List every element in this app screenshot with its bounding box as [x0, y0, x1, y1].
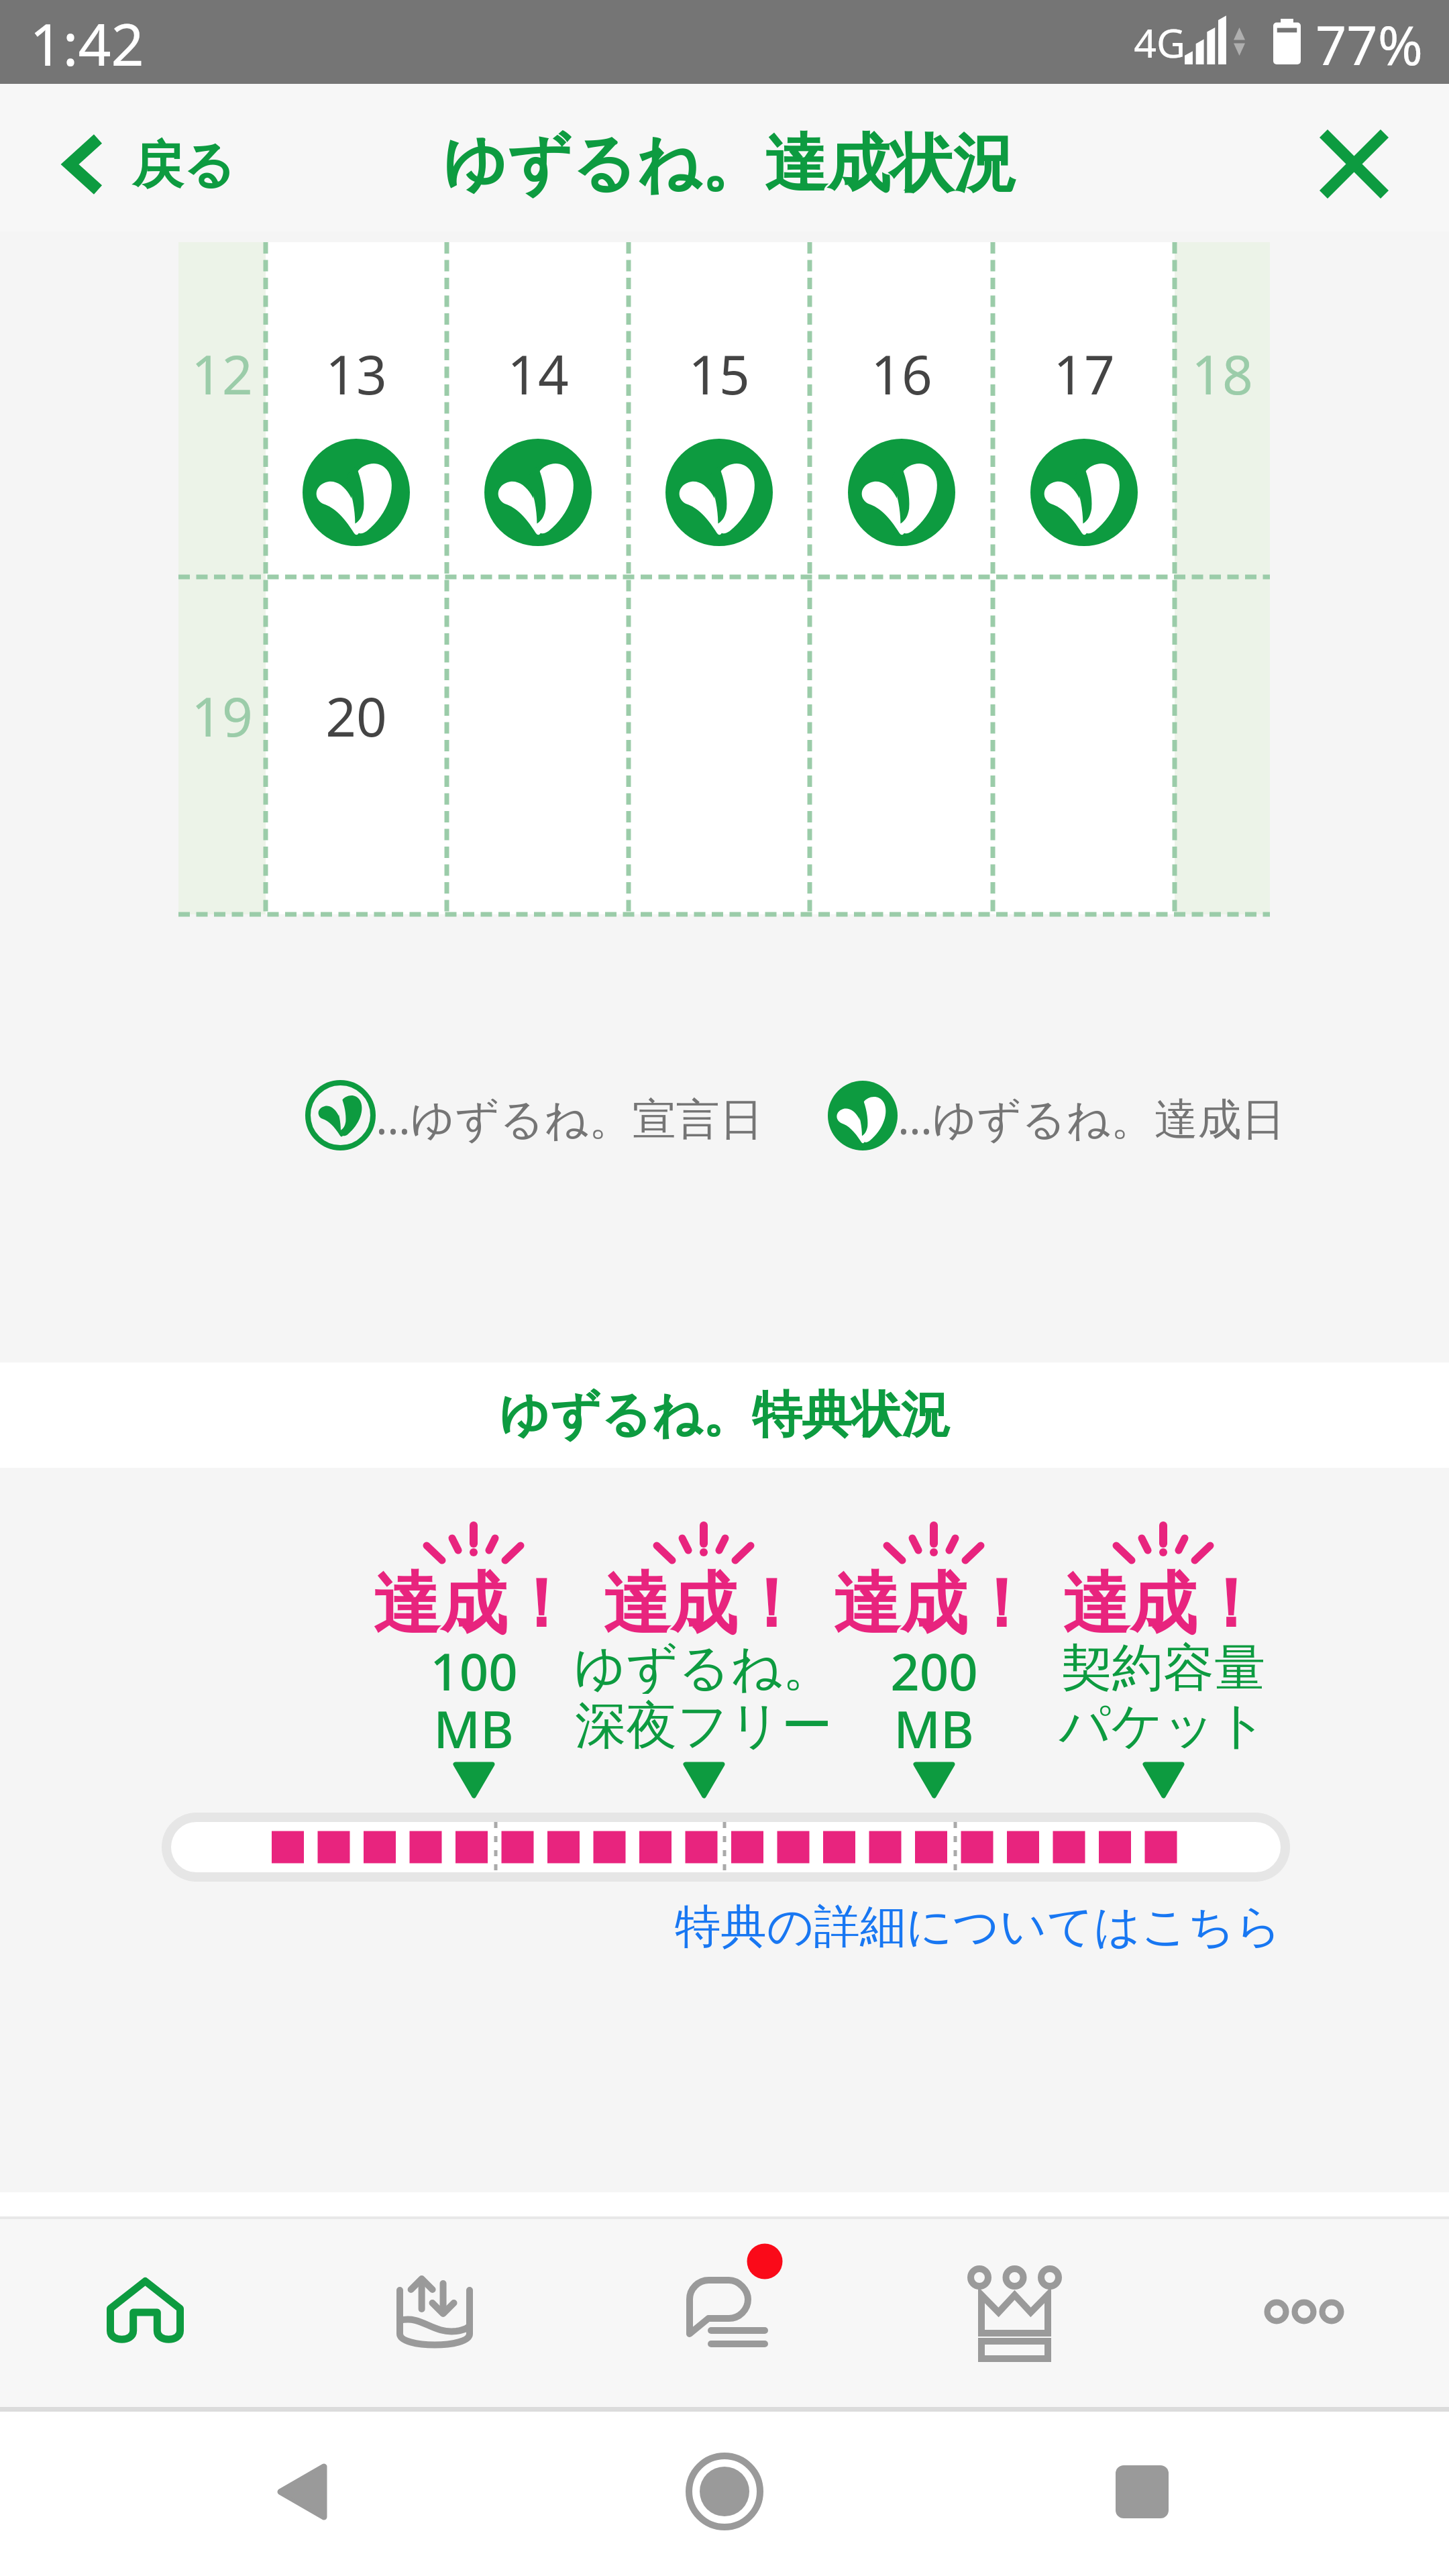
staticText: パケット [1059, 1694, 1268, 1752]
staticText: 特典の詳細についてはこちら [675, 1898, 1282, 1955]
staticText: 15 [688, 337, 750, 410]
staticText: 契約容量 [1061, 1636, 1265, 1694]
staticText: 20 [325, 679, 387, 752]
button[interactable]: 戻る [0, 99, 276, 217]
button[interactable]: 特典の詳細についてはこちら [675, 1898, 1282, 1955]
staticText: 12 [191, 337, 253, 410]
staticText: MB [433, 1694, 514, 1752]
staticText: 19 [191, 679, 253, 752]
staticText: 達成！ [373, 1562, 574, 1647]
button[interactable]: Home [0, 2216, 290, 2407]
button[interactable]: Data usage [290, 2216, 580, 2407]
button[interactable]: Home [651, 2418, 798, 2565]
button[interactable]: More [1159, 2216, 1449, 2407]
staticText: 18 [1191, 337, 1253, 410]
staticText: 16 [871, 337, 932, 410]
staticText: …ゆずるね。宣言日 [376, 1088, 763, 1148]
staticText: 4G [1134, 15, 1185, 69]
staticText: ゆずるね。達成状況 [443, 124, 1016, 203]
button[interactable]: Rewards [869, 2216, 1159, 2407]
staticText: ゆずるね。特典状況 [499, 1384, 951, 1446]
staticText: 1:42 [30, 4, 144, 83]
staticText: 深夜フリー [575, 1694, 833, 1752]
button[interactable]: Recent apps [1068, 2418, 1216, 2565]
staticText: 達成！ [1063, 1562, 1264, 1647]
staticText: 戻る [132, 133, 235, 198]
staticText: 200 [890, 1636, 978, 1694]
staticText: 17 [1053, 337, 1115, 410]
staticText: 達成！ [603, 1562, 804, 1647]
button[interactable]: Close [1278, 91, 1449, 225]
button[interactable]: Messages [580, 2216, 869, 2407]
button[interactable]: Back [228, 2418, 376, 2565]
staticText: 達成！ [833, 1562, 1034, 1647]
staticText: 14 [507, 337, 569, 410]
staticText: ゆずるね。 [574, 1636, 834, 1694]
staticText: 100 [430, 1636, 518, 1694]
staticText: 13 [325, 337, 387, 410]
staticText: 77% [1316, 7, 1423, 80]
staticText: …ゆずるね。達成日 [898, 1088, 1285, 1148]
staticText: MB [894, 1694, 974, 1752]
